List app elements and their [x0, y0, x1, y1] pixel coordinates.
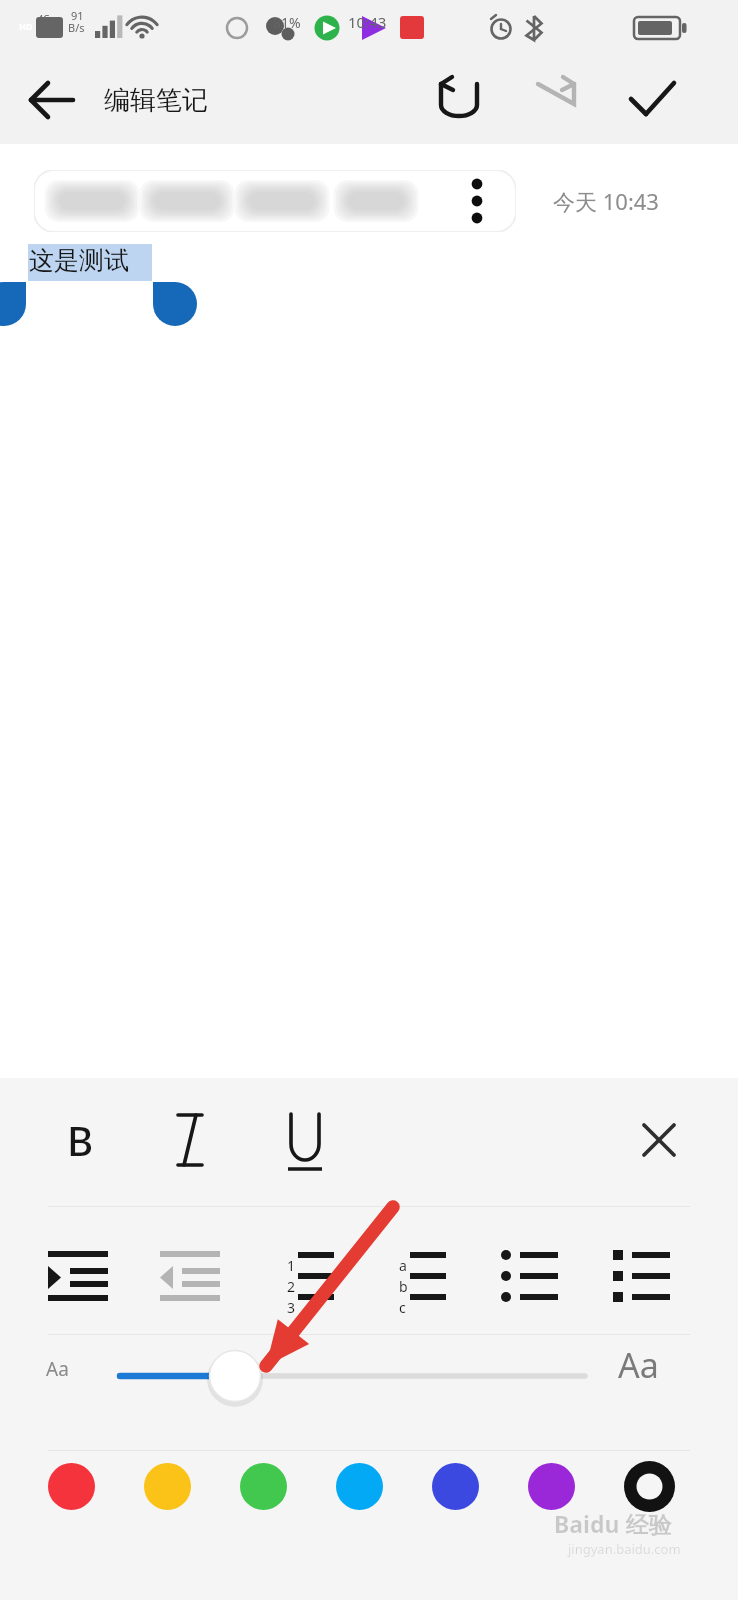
button[interactable]: 黑色，已选中: [623, 1460, 676, 1513]
button[interactable]: 圆点列表: [480, 1228, 576, 1324]
button[interactable]: 字体大小: [108, 1334, 612, 1418]
button[interactable]: 颜色: [48, 1463, 95, 1510]
staticText: 3: [287, 1298, 296, 1317]
button[interactable]: 数字列表: [254, 1228, 350, 1324]
staticText: Baidu 经验: [554, 1508, 672, 1539]
staticText: a: [399, 1256, 407, 1275]
button[interactable]: 字母列表: [366, 1228, 462, 1324]
staticText: 2: [287, 1277, 296, 1296]
button[interactable]: 撤销: [424, 65, 494, 135]
staticText: 编辑笔记: [104, 84, 208, 117]
button[interactable]: 返回: [16, 64, 88, 136]
button[interactable]: 减少缩进: [142, 1228, 238, 1324]
button[interactable]: [34, 170, 516, 232]
staticText: 这是测试: [29, 245, 129, 276]
button[interactable]: 关闭: [619, 1100, 699, 1180]
staticText: HD: [19, 20, 33, 32]
button[interactable]: 颜色: [336, 1463, 383, 1510]
staticText: c: [399, 1298, 406, 1317]
button[interactable]: 颜色: [144, 1463, 191, 1510]
staticText: Aa: [46, 1356, 69, 1382]
staticText: 10:43: [348, 12, 387, 32]
staticText: Aa: [618, 1342, 659, 1388]
button[interactable]: 恢复: [521, 65, 591, 135]
staticText: 91: [71, 8, 84, 23]
button[interactable]: 增加缩进: [30, 1228, 126, 1324]
button[interactable]: 更多选项: [438, 170, 500, 232]
button[interactable]: 方块列表: [592, 1228, 688, 1324]
staticText: 4G: [38, 12, 50, 24]
button[interactable]: 完成: [617, 65, 687, 135]
staticText: B: [67, 1113, 94, 1167]
staticText: B/s: [68, 20, 85, 35]
staticText: 81%: [273, 13, 301, 32]
button[interactable]: 斜体: [150, 1100, 230, 1180]
button[interactable]: 颜色: [528, 1463, 575, 1510]
staticText: 1: [287, 1256, 296, 1275]
staticText: 今天 10:43: [553, 186, 659, 216]
staticText: b: [399, 1277, 408, 1296]
button[interactable]: B: [40, 1100, 120, 1180]
button[interactable]: 颜色: [240, 1463, 287, 1510]
staticText: jingyan.baidu.com: [568, 1540, 681, 1558]
button[interactable]: 下划线: [265, 1100, 345, 1180]
button[interactable]: 颜色: [432, 1463, 479, 1510]
